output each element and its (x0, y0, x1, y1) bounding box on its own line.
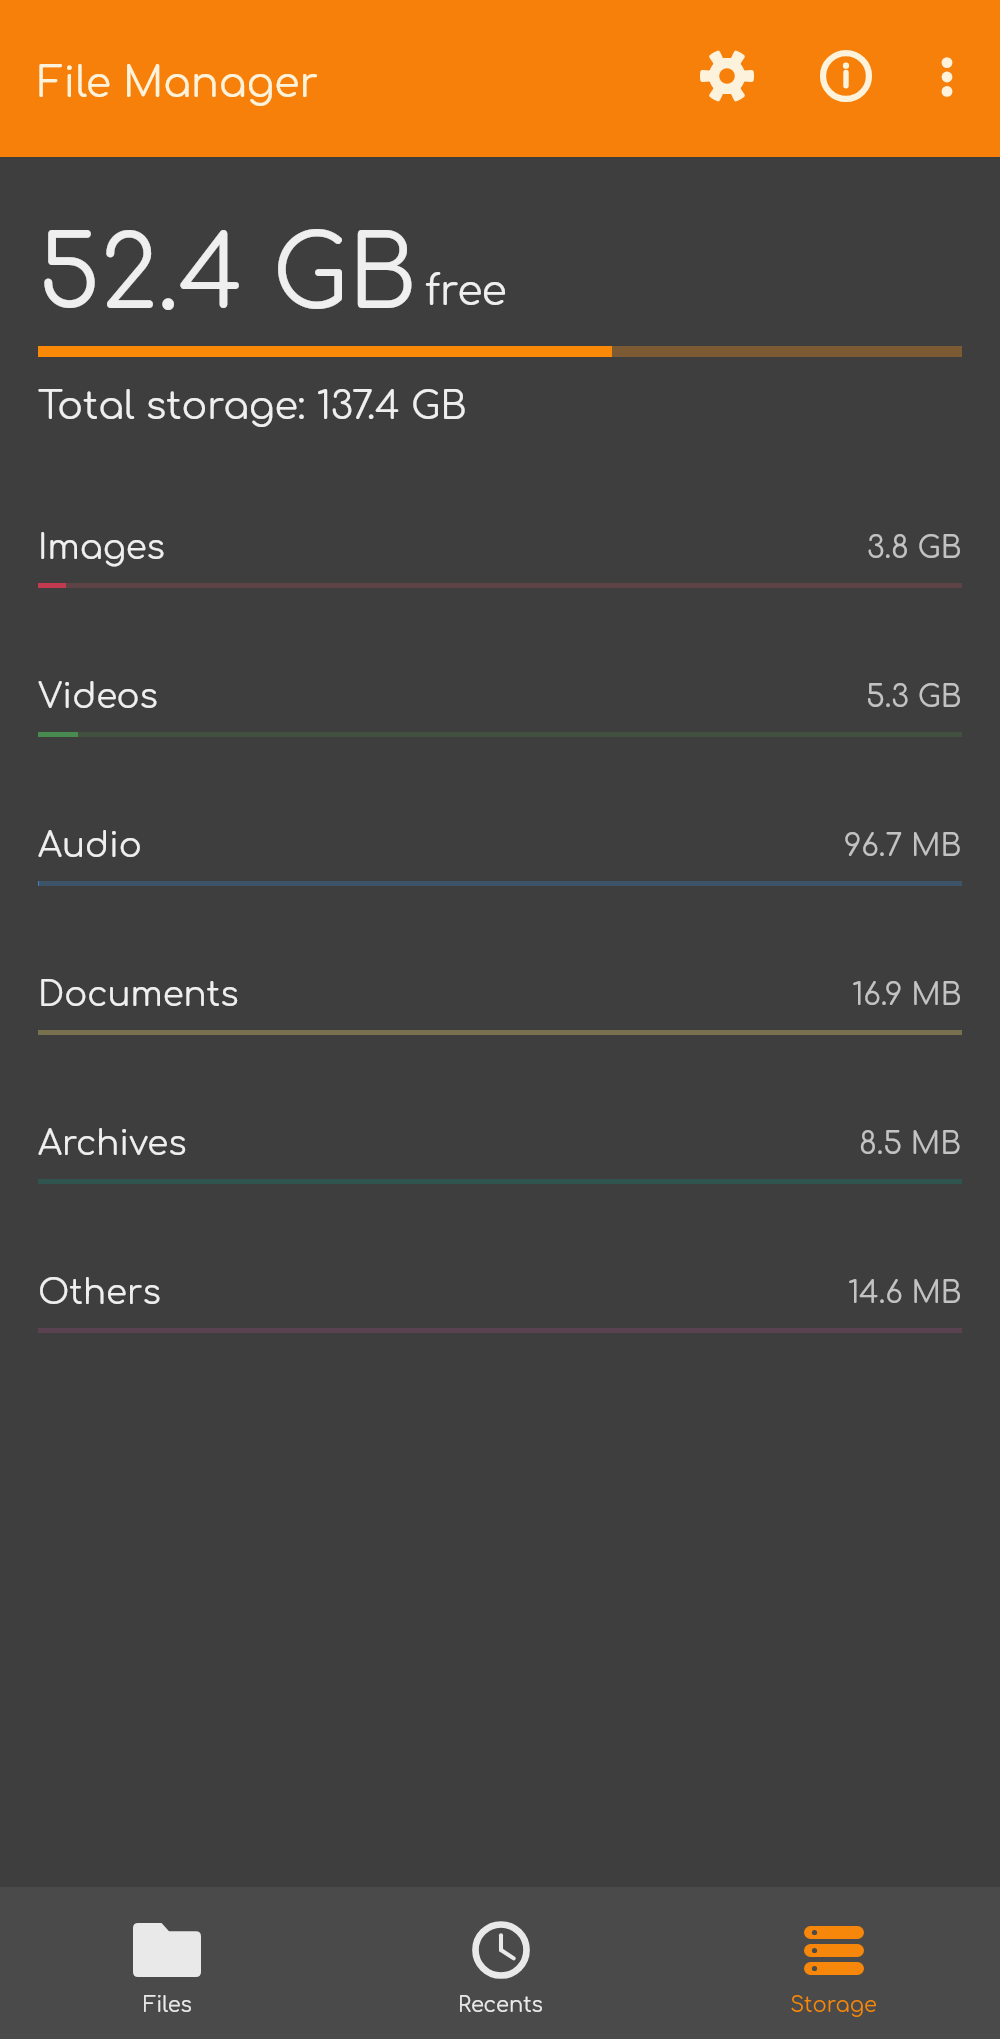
button[interactable]: Images (0, 523, 1000, 672)
staticText: free (425, 269, 507, 315)
button[interactable]: Settings (682, 31, 772, 121)
button[interactable]: Archives (0, 1119, 1000, 1268)
button[interactable]: Others (0, 1268, 1000, 1417)
staticText: Documents (38, 976, 239, 1014)
staticText: File Manager (38, 61, 319, 107)
staticText: Files (143, 1993, 192, 2016)
staticText: Recents (458, 1993, 543, 2016)
staticText: Others (38, 1274, 161, 1312)
button[interactable]: Videos (0, 672, 1000, 821)
staticText: 3.8 GB (867, 532, 962, 565)
staticText: 8.5 MB (859, 1128, 962, 1161)
button[interactable]: Recents (334, 1887, 667, 2039)
staticText: 96.7 MB (844, 830, 962, 863)
staticText: Archives (38, 1125, 187, 1163)
staticText: 52.4 GB (38, 221, 417, 331)
button[interactable]: Files (0, 1887, 334, 2039)
button[interactable]: More options (903, 33, 991, 121)
button[interactable]: Audio (0, 821, 1000, 970)
button[interactable]: Documents (0, 970, 1000, 1119)
staticText: Audio (38, 827, 142, 865)
staticText: 5.3 GB (866, 681, 962, 714)
staticText: Storage (790, 1993, 877, 2016)
staticText: 14.6 MB (848, 1277, 962, 1310)
button[interactable]: Storage (667, 1887, 1000, 2039)
staticText: Images (38, 529, 165, 567)
button[interactable]: Info (801, 31, 891, 121)
staticText: 16.9 MB (852, 979, 962, 1012)
staticText: Total storage: 137.4 GB (38, 386, 467, 428)
staticText: Videos (38, 678, 158, 716)
